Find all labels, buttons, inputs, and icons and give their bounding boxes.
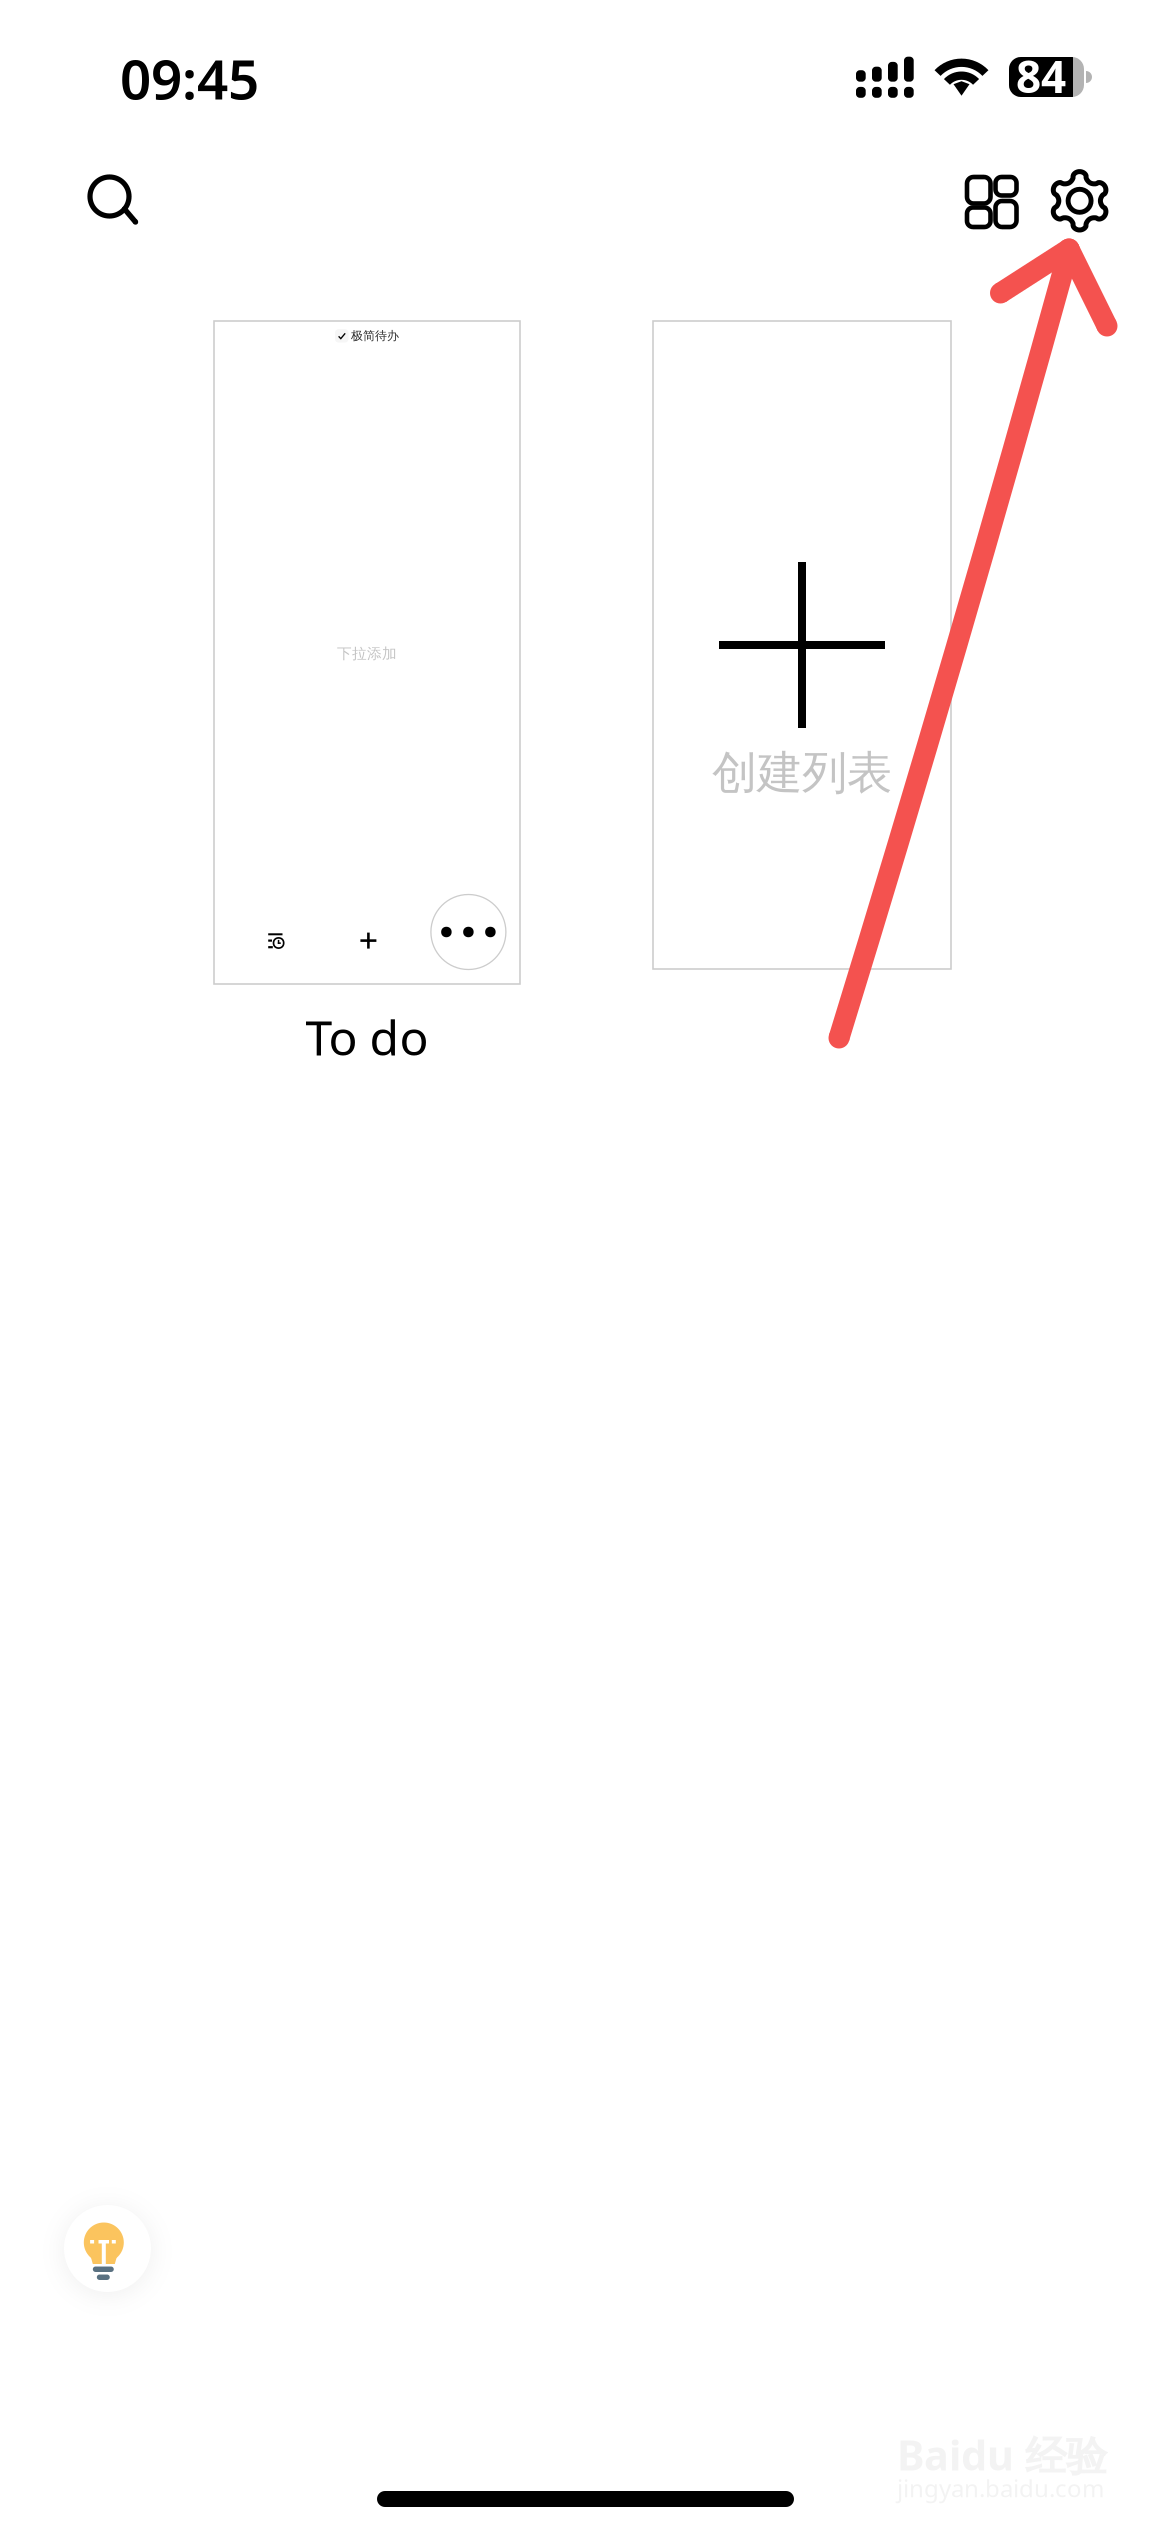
- button[interactable]: 极简待办: [214, 321, 520, 1069]
- button[interactable]: Settings: [1035, 155, 1125, 247]
- button[interactable]: Tips: [64, 2205, 151, 2292]
- staticText: 84: [1016, 47, 1066, 105]
- button[interactable]: Search: [72, 159, 157, 244]
- staticText: 创建列表: [712, 745, 892, 801]
- staticText: To do: [305, 1005, 428, 1069]
- staticText: Baidu 经验: [897, 2427, 1107, 2482]
- staticText: jingyan.baidu.com: [897, 2472, 1104, 2504]
- button[interactable]: 创建列表: [653, 321, 951, 969]
- button[interactable]: Add task: [350, 923, 386, 959]
- button[interactable]: More options: [431, 894, 506, 969]
- button[interactable]: History: [258, 923, 294, 958]
- button[interactable]: Switch layout: [949, 159, 1034, 245]
- staticText: 09:45: [120, 42, 259, 115]
- staticText: 极简待办: [351, 328, 399, 343]
- staticText: 下拉添加: [337, 644, 397, 662]
